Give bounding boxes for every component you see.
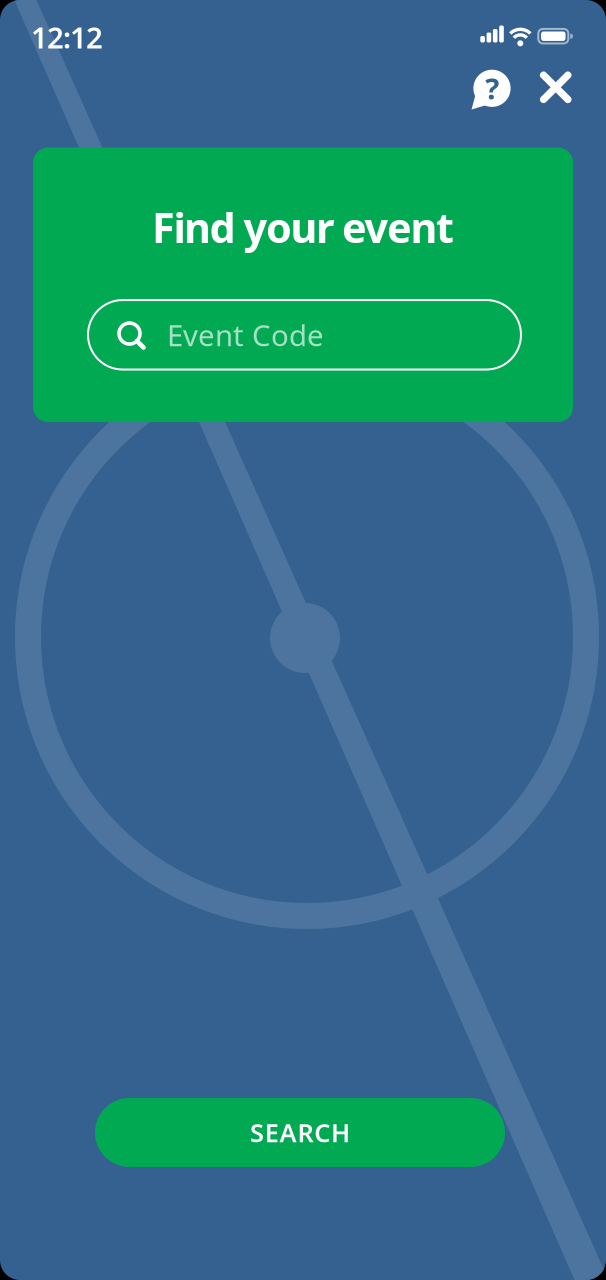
button[interactable]: SEARCH (95, 1098, 505, 1167)
staticText: Find your event (152, 200, 454, 254)
button[interactable]: Close (531, 62, 581, 112)
staticText: 12:12 (31, 17, 103, 56)
staticText: ? (485, 68, 499, 107)
button[interactable]: Event Code (88, 300, 521, 370)
staticText: SEARCH (250, 1116, 350, 1149)
staticText: Event Code (167, 315, 324, 354)
button[interactable]: Help (466, 64, 518, 116)
